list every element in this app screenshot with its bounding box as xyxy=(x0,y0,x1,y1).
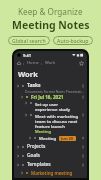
staticText: Fri Jul 16, 2021 xyxy=(31,94,81,100)
staticText: Global search xyxy=(12,37,46,44)
button[interactable]: Marketing meeting xyxy=(14,170,87,176)
staticText: Work xyxy=(18,69,38,79)
button[interactable]: Favorite xyxy=(79,61,84,66)
button[interactable]: Meet with marketing team to discuss next… xyxy=(14,113,87,134)
staticText: Home xyxy=(27,60,39,66)
button[interactable]: Templates xyxy=(14,161,87,168)
staticText: Auto-backup xyxy=(57,37,89,44)
staticText: Documents Format Notes Presentation xyxy=(25,89,84,93)
staticText: Jun 20 xyxy=(61,136,74,141)
staticText: 9:41 xyxy=(23,53,31,58)
staticText: Meet with marketing team to discuss next… xyxy=(35,113,79,129)
staticText: Projects xyxy=(27,143,81,150)
staticText: Set up user experience study xyxy=(35,101,84,112)
staticText: › xyxy=(23,61,25,66)
button[interactable]: Projects xyxy=(14,143,87,150)
staticText: Templates xyxy=(27,161,81,168)
button[interactable]: Set up user experience study xyxy=(14,101,87,112)
staticText: Keep & Organize xyxy=(18,6,83,17)
staticText: Meeting xyxy=(39,135,57,141)
button[interactable]: Tasks xyxy=(14,82,87,89)
button[interactable]: Fri Jul 16, 2021 xyxy=(14,94,87,100)
staticText: › xyxy=(41,61,43,66)
button[interactable]: Meeting xyxy=(14,135,87,141)
staticText: Meeting Notes xyxy=(12,18,90,32)
staticText: Goals xyxy=(27,152,81,159)
button[interactable]: Global search xyxy=(8,36,50,45)
button[interactable]: Goals xyxy=(14,152,87,159)
button[interactable]: Auto-backup xyxy=(53,36,93,45)
button[interactable]: Home xyxy=(17,61,21,65)
staticText: Work xyxy=(45,60,56,66)
staticText: Tasks xyxy=(27,82,81,89)
staticText: Meeting xyxy=(35,129,51,134)
staticText: Marketing meeting xyxy=(31,170,87,176)
